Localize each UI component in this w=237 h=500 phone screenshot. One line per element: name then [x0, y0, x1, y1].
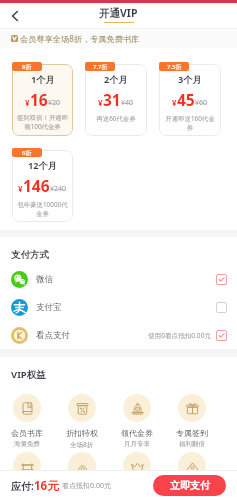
staticText: 开通VIP [99, 6, 138, 20]
button[interactable]: 免费听书 [54, 452, 109, 500]
staticText: 2个月 [104, 73, 128, 86]
button[interactable]: 微信 [0, 265, 237, 293]
button[interactable]: 支付宝 [0, 293, 237, 321]
staticText: 看点抵扣0.00元 [62, 481, 111, 491]
staticText: 7.7折 [93, 63, 108, 71]
button[interactable]: 更多特权 [164, 452, 219, 500]
button[interactable]: 会员书库 [0, 394, 54, 448]
button[interactable]: 专属客服 [109, 452, 164, 500]
staticText: ¥ [98, 97, 103, 108]
button[interactable]: 3个月 [159, 64, 221, 136]
staticText: 全场8折 [70, 440, 94, 449]
staticText: 身份标识 [11, 486, 43, 496]
staticText: ¥240 [50, 184, 67, 194]
staticText: 开通即送160代金 券 [159, 114, 221, 132]
button[interactable]: 12个月 [12, 150, 73, 222]
button[interactable]: 看点支付 [0, 321, 237, 349]
button[interactable]: 1个月 [12, 64, 73, 136]
staticText: ¥ [18, 183, 23, 194]
staticText: 支付方式 [11, 249, 49, 261]
staticText: 应付: [11, 479, 34, 493]
staticText: 12个月 [28, 159, 57, 172]
staticText: 海量免费 [14, 440, 40, 448]
button[interactable]: 专属签到 [164, 394, 219, 448]
staticText: 免费听书 [66, 486, 98, 496]
staticText: 8折 [22, 63, 32, 71]
staticText: 支付宝 [36, 302, 62, 313]
staticText: 看点支付 [36, 330, 70, 341]
staticText: 146 [23, 175, 50, 196]
staticText: 16元 [34, 478, 59, 494]
staticText: 会员书库 [11, 428, 43, 438]
staticText: ¥40 [121, 98, 134, 108]
staticText: 专属签到 [176, 428, 208, 438]
staticText: 16 [30, 89, 48, 110]
staticText: 折扣特权 [66, 428, 98, 438]
staticText: ¥20 [48, 98, 61, 108]
button[interactable]: 折扣特权 [54, 394, 109, 449]
button[interactable]: 立即支付 [153, 475, 226, 496]
staticText: 3个月 [178, 73, 202, 86]
staticText: ¥60 [195, 98, 208, 108]
staticText: ¥ [25, 97, 30, 108]
staticText: 月月专享 [124, 440, 150, 448]
staticText: 使用0看点抵扣0.00元 [148, 331, 212, 340]
staticText: 6折 [22, 149, 32, 157]
staticText: 45 [177, 89, 195, 110]
button[interactable]: 身份标识 [0, 452, 54, 500]
staticText: 包年豪送10000代 金券 [12, 200, 73, 218]
staticText: 再送60代金券 [85, 114, 147, 123]
staticText: VIP权益 [11, 368, 46, 381]
staticText: 1个月 [31, 73, 55, 86]
staticText: 7.5折 [167, 63, 182, 71]
button[interactable]: 2个月 [85, 64, 147, 136]
staticText: 会员尊享全场8折，专属免费书库 [20, 33, 140, 44]
button[interactable]: Back [0, 3, 30, 28]
staticText: ¥ [172, 97, 177, 108]
staticText: 福利翻倍 [179, 440, 205, 448]
staticText: 微信 [36, 274, 53, 285]
staticText: 31 [103, 89, 121, 110]
staticText: 签到双倍！开通即 领100代金券 [12, 114, 73, 131]
staticText: 立即支付 [170, 479, 210, 492]
staticText: 领代金券 [121, 428, 153, 438]
button[interactable]: 领代金券 [109, 394, 164, 448]
staticText: 更多特权 [176, 486, 208, 496]
